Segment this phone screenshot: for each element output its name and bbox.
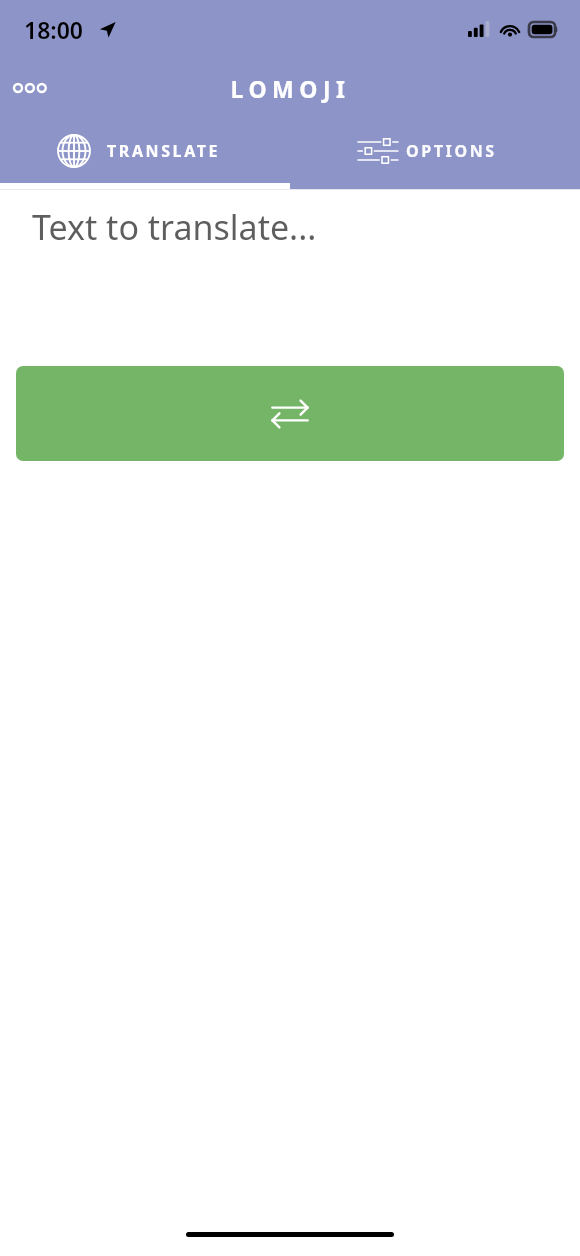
staticText: 18:00 bbox=[24, 14, 83, 45]
button[interactable]: Text to translate... bbox=[32, 204, 548, 250]
button[interactable]: TRANSLATE bbox=[0, 118, 290, 183]
staticText: OPTIONS bbox=[406, 140, 497, 162]
staticText: TRANSLATE bbox=[107, 140, 221, 162]
staticText: LOMOJI bbox=[230, 73, 351, 104]
button[interactable]: OPTIONS bbox=[290, 118, 580, 183]
button[interactable]: Swap languages bbox=[16, 366, 564, 461]
button[interactable]: More options bbox=[4, 66, 60, 110]
